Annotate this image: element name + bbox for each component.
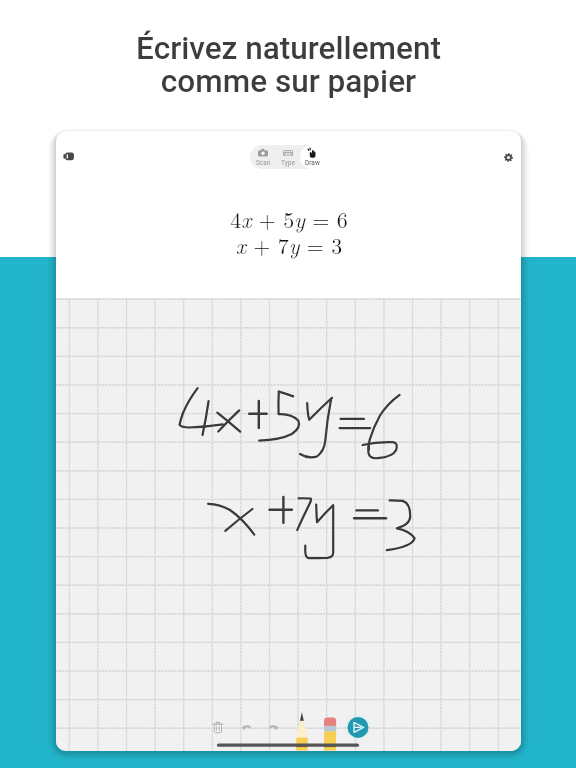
staticText: 4x + 5y = 6 x + 7y = 3 <box>230 203 348 261</box>
button[interactable]: Scan <box>250 145 276 169</box>
staticText: Draw <box>305 159 320 167</box>
button[interactable]: Type <box>276 145 300 169</box>
button[interactable]: Delete <box>206 716 230 740</box>
button[interactable]: Draw <box>300 145 324 169</box>
button[interactable]: Pencil tool <box>289 718 315 744</box>
button[interactable]: Redo <box>262 716 286 740</box>
staticText: Type <box>281 159 295 167</box>
button[interactable]: Undo <box>235 716 259 740</box>
staticText: Écrivez naturellement comme sur papier <box>136 30 441 99</box>
button[interactable]: Settings <box>495 144 521 171</box>
button[interactable]: Send <box>345 714 371 740</box>
button[interactable]: Eraser tool <box>317 718 343 744</box>
staticText: Scan <box>256 159 271 167</box>
button[interactable]: Panel <box>56 143 83 170</box>
